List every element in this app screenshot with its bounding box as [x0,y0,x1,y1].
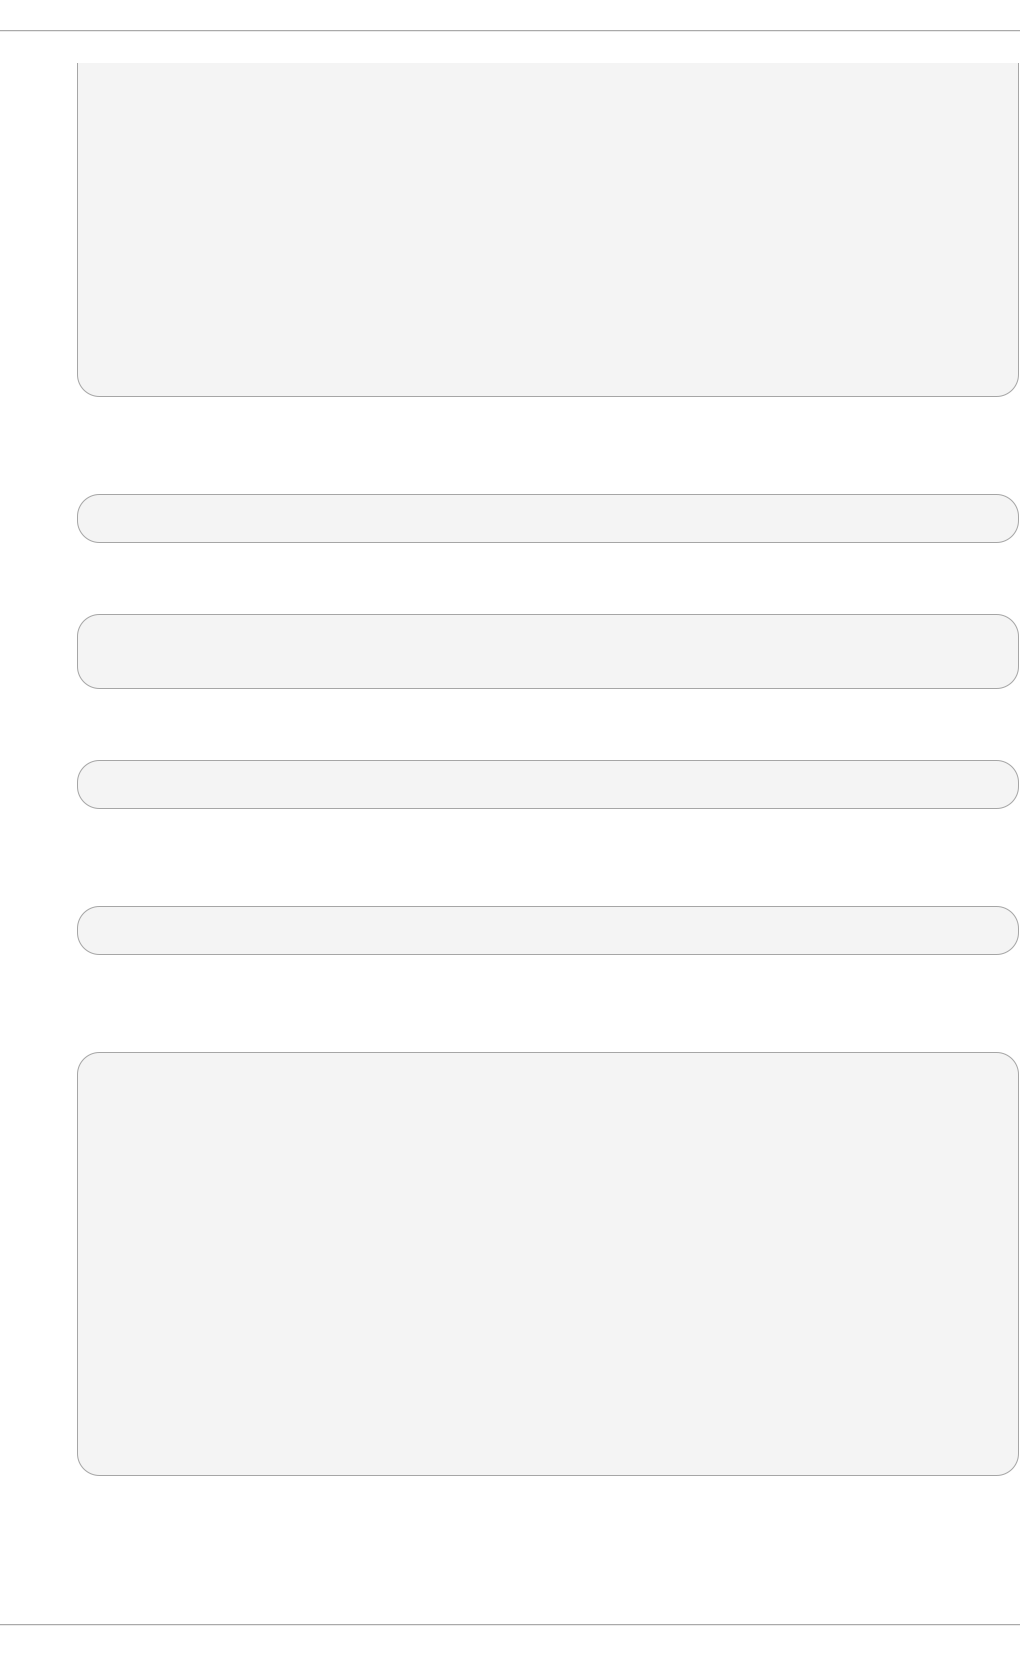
button[interactable]: Loading item 4 [77,906,1019,955]
button[interactable]: Loading item 5 [77,1052,1019,1476]
button[interactable]: Loading item 1 [77,494,1019,543]
button[interactable]: Loading item 2 [77,614,1019,689]
button[interactable]: Loading item 3 [77,760,1019,809]
button[interactable]: Loading featured item [77,63,1019,397]
